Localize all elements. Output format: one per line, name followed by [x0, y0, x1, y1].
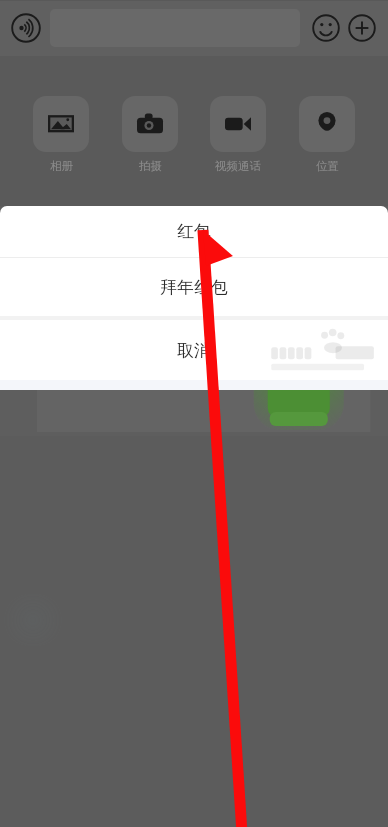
- button[interactable]: Emoji: [308, 10, 344, 46]
- staticText: 红包: [177, 221, 211, 242]
- staticText: 位置: [316, 159, 339, 173]
- staticText: 视频通话: [215, 159, 261, 173]
- button[interactable]: 取消: [0, 320, 388, 380]
- staticText: 取消: [177, 340, 211, 361]
- button[interactable]: Camera: [112, 96, 188, 173]
- button[interactable]: More: [344, 10, 380, 46]
- staticText: 拜年红包: [160, 277, 228, 298]
- button[interactable]: Video call: [200, 96, 276, 173]
- staticText: 拍摄: [139, 159, 162, 173]
- button[interactable]: 红包: [0, 206, 388, 257]
- button[interactable]: Voice input: [8, 10, 44, 46]
- button[interactable]: Location: [289, 96, 365, 173]
- staticText: 相册: [50, 159, 73, 173]
- button[interactable]: Album: [23, 96, 99, 173]
- button[interactable]: 拜年红包: [0, 258, 388, 316]
